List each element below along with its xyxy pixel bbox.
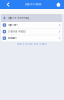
staticText: English for Networking	[8, 17, 29, 19]
button[interactable]: Vocabulary	[1, 35, 62, 41]
button[interactable]: English Daily	[1, 22, 62, 28]
staticText: English Daily	[7, 24, 17, 26]
staticText: Vocabulary	[7, 37, 16, 39]
button[interactable]: English for Networking	[1, 14, 62, 22]
staticText: English Courses	[25, 3, 41, 6]
button[interactable]: What is the best way to learn?	[17, 41, 47, 47]
staticText: Grammar Practice	[7, 30, 25, 33]
button[interactable]: Grammar Practice	[1, 29, 62, 35]
staticText: What is the best way to learn?	[17, 43, 47, 45]
button[interactable]: Home	[53, 0, 64, 9]
button[interactable]: Back	[0, 0, 12, 9]
